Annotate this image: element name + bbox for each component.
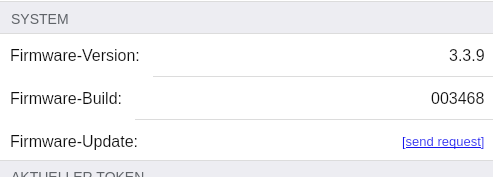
staticText: Firmware-Update: [10, 133, 139, 151]
staticText: SYSTEM [11, 11, 69, 27]
button[interactable]: Firmware-Build: [0, 77, 493, 119]
button[interactable]: SYSTEM [0, 2, 493, 33]
button[interactable]: Firmware-Update: [0, 120, 493, 160]
staticText: Firmware-Version: [10, 47, 140, 65]
button[interactable]: AKTUELLER TOKEN [0, 161, 493, 177]
staticText: 3.3.9 [449, 47, 485, 65]
staticText: 003468 [431, 90, 485, 108]
staticText: Firmware-Build: [10, 90, 123, 108]
button[interactable]: Firmware-Version: [0, 34, 493, 76]
staticText: AKTUELLER TOKEN [11, 169, 145, 177]
